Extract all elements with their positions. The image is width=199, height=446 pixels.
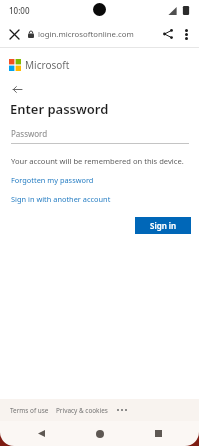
button[interactable]: Back [8,80,26,98]
button[interactable]: Back [23,421,59,446]
staticText: Your account will be remembered on this … [11,156,184,166]
staticText: login.microsoftonline.com [38,29,134,40]
staticText: Microsoft [25,58,70,72]
button[interactable]: Home [82,421,118,446]
staticText: Sign in [150,220,177,231]
staticText: Terms of use [10,406,49,415]
staticText: Enter password [10,100,109,118]
staticText: Privacy & cookies [56,406,108,415]
button[interactable]: Sign in [135,217,191,234]
button[interactable]: Forgotten my password [11,175,94,185]
staticText: Sign in with another account [11,194,111,204]
button[interactable]: Sign in with another account [11,194,111,204]
button[interactable]: Recent apps [140,421,176,446]
button[interactable]: Close [2,22,26,46]
button[interactable]: Privacy & cookies [56,406,108,415]
staticText: Password [11,128,48,139]
button[interactable]: Terms of use [10,406,49,415]
staticText: Forgotten my password [11,175,94,185]
button[interactable]: More [115,404,129,416]
button[interactable]: Share [157,23,179,45]
staticText: 10:00 [9,5,30,16]
button[interactable]: More options [176,24,196,44]
